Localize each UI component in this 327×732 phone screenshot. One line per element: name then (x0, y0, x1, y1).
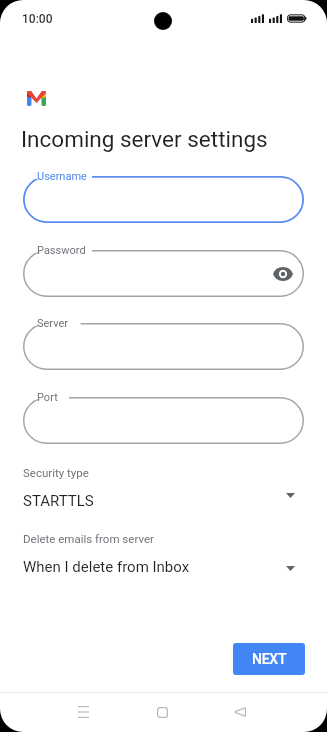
staticText: Password (37, 244, 86, 257)
button[interactable]: Show password (271, 262, 295, 286)
button[interactable]: NEXT (233, 643, 305, 675)
button[interactable]: Server (23, 323, 304, 370)
staticText: Username (37, 170, 87, 183)
button[interactable]: Back (217, 692, 261, 732)
staticText: Delete emails from server (23, 532, 154, 545)
staticText: Port (37, 391, 58, 404)
button[interactable]: Delete emails from server (0, 532, 327, 577)
staticText: NEXT (252, 651, 287, 667)
staticText: 10:00 (22, 12, 53, 26)
button[interactable]: Port (23, 397, 304, 444)
button[interactable]: Home (140, 692, 184, 732)
staticText: STARTTLS (23, 492, 94, 510)
button[interactable]: Security type (0, 466, 327, 511)
staticText: When I delete from Inbox (23, 558, 190, 576)
button[interactable]: Recent apps (61, 692, 105, 732)
button[interactable]: Password (23, 250, 304, 297)
button[interactable]: Username (23, 176, 304, 223)
staticText: Server (37, 317, 69, 330)
staticText: Incoming server settings (21, 126, 268, 152)
staticText: Security type (23, 466, 89, 479)
